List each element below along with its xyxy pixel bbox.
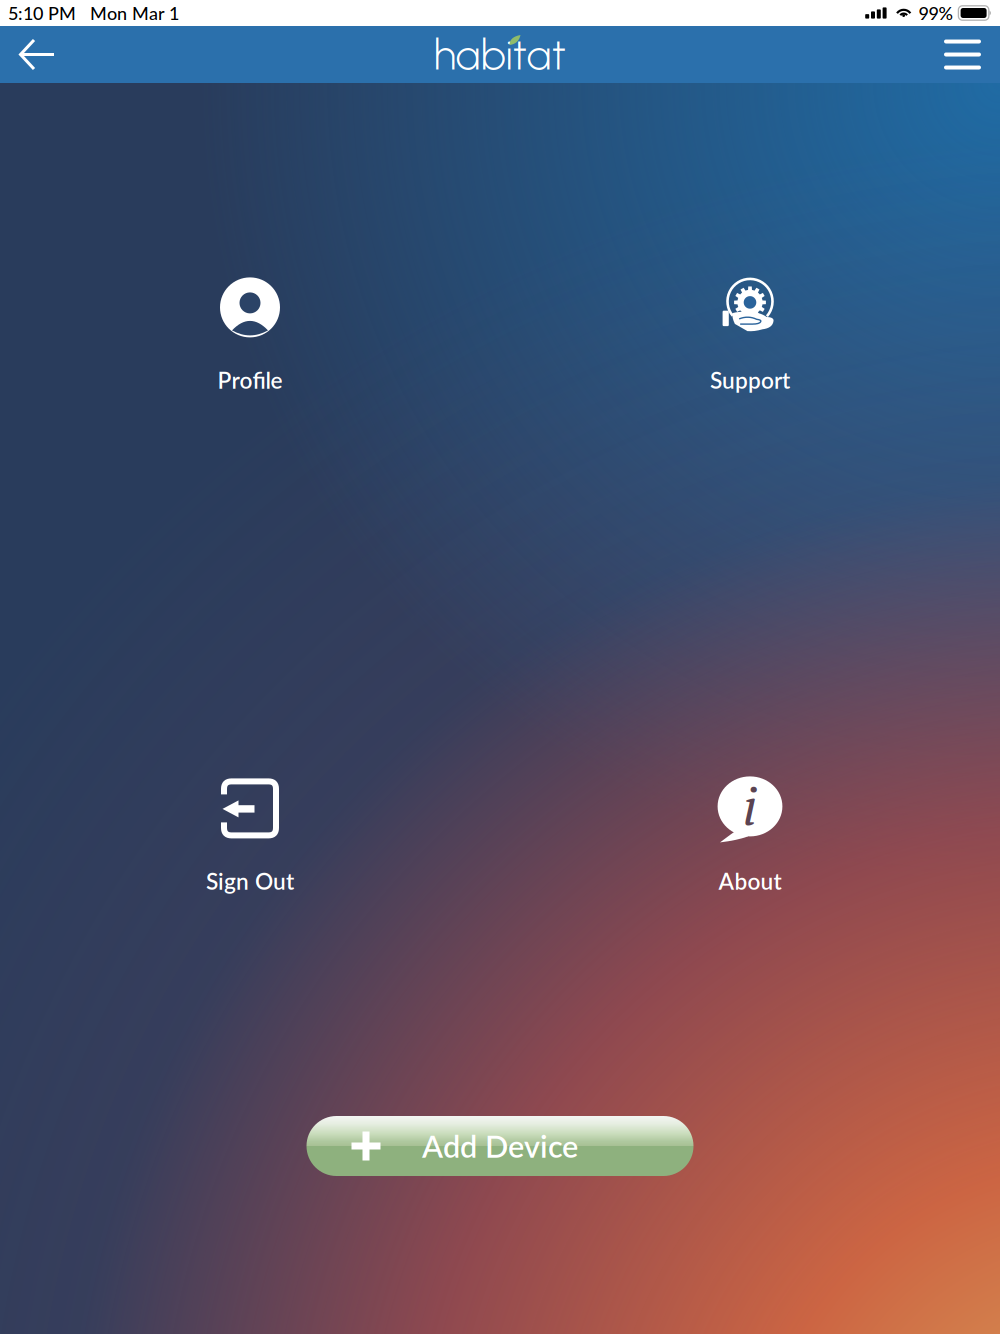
button[interactable]: Sign Out: [90, 778, 410, 893]
button[interactable]: Back: [0, 26, 80, 83]
staticText: 5:10 PM: [8, 2, 76, 24]
staticText: i: [742, 770, 757, 841]
staticText: habitat: [433, 29, 566, 80]
staticText: Sign Out: [206, 867, 294, 895]
staticText: Mon Mar 1: [90, 2, 179, 24]
button[interactable]: Add Device: [306, 1116, 693, 1176]
staticText: About: [718, 867, 781, 895]
staticText: Support: [710, 366, 790, 394]
button[interactable]: Support: [590, 277, 910, 392]
button[interactable]: i: [590, 778, 910, 893]
button[interactable]: Profile: [90, 277, 410, 392]
staticText: Add Device: [422, 1128, 578, 1164]
staticText: Profile: [217, 366, 282, 394]
button[interactable]: Menu: [920, 26, 1000, 83]
staticText: 99%: [918, 2, 953, 24]
